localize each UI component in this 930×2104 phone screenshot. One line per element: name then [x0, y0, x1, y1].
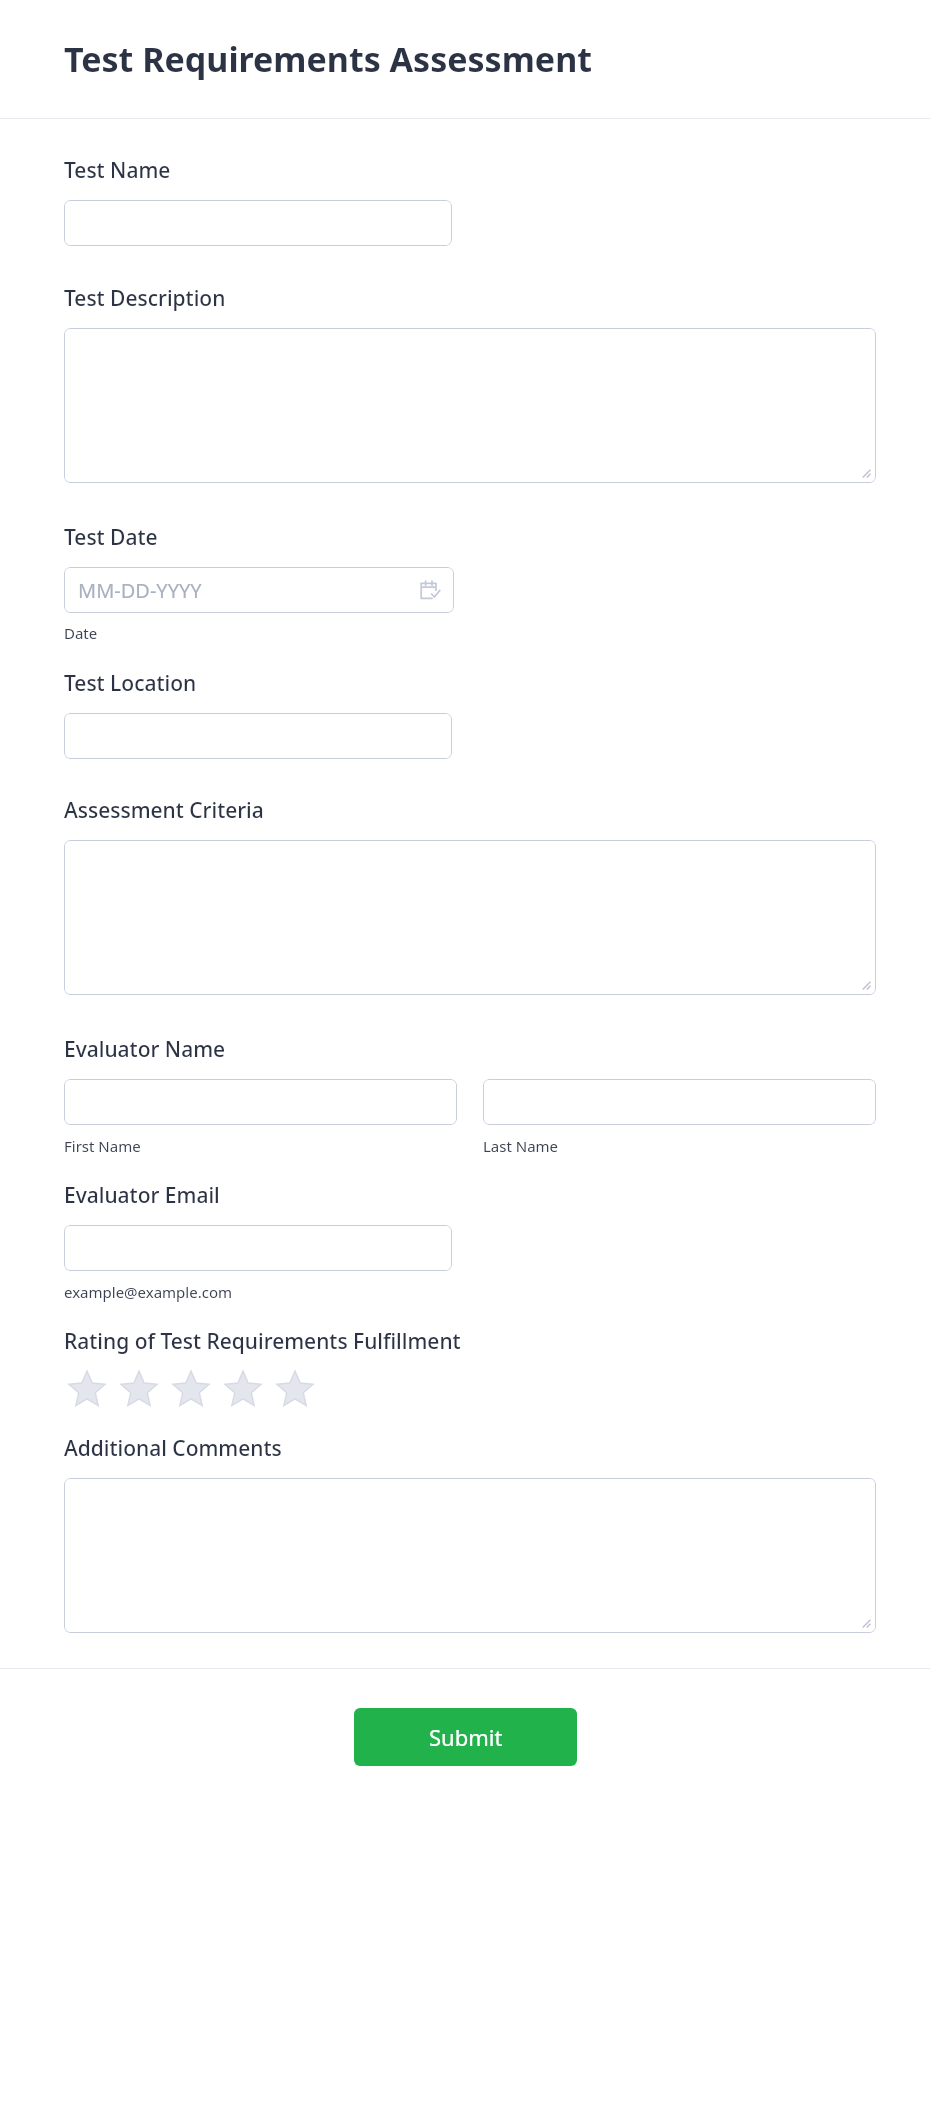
button[interactable]	[64, 1225, 452, 1271]
staticText: Additional Comments	[64, 1434, 282, 1463]
staticText: Test Description	[64, 284, 226, 313]
button[interactable]	[64, 1079, 457, 1125]
button[interactable]	[64, 200, 452, 246]
staticText: MM-DD-YYYY	[78, 577, 202, 604]
button[interactable]	[483, 1079, 876, 1125]
button[interactable]: Submit	[354, 1708, 577, 1766]
staticText: Test Name	[64, 156, 171, 185]
staticText: Evaluator Name	[64, 1035, 226, 1064]
button[interactable]: MM-DD-YYYY	[64, 567, 454, 613]
staticText: Date	[64, 623, 98, 643]
button[interactable]: Rate 2 stars	[116, 1366, 162, 1412]
button[interactable]: Rate 1 stars	[64, 1366, 110, 1412]
staticText: Test Date	[64, 523, 158, 552]
staticText: Evaluator Email	[64, 1181, 220, 1210]
button[interactable]: Rate 5 stars	[272, 1366, 318, 1412]
button[interactable]	[64, 328, 876, 483]
button[interactable]	[64, 840, 876, 995]
staticText: example@example.com	[64, 1282, 232, 1302]
staticText: Rating of Test Requirements Fulfillment	[64, 1327, 461, 1356]
staticText: Assessment Criteria	[64, 796, 264, 825]
staticText: Last Name	[483, 1136, 559, 1156]
other: Pick date	[420, 580, 440, 600]
staticText: First Name	[64, 1136, 141, 1156]
button[interactable]: Rate 4 stars	[220, 1366, 266, 1412]
staticText: Test Location	[64, 669, 197, 698]
staticText: Test Requirements Assessment	[64, 36, 592, 82]
button[interactable]	[64, 713, 452, 759]
button[interactable]	[64, 1478, 876, 1633]
staticText: Submit	[429, 1722, 503, 1752]
button[interactable]: Rate 3 stars	[168, 1366, 214, 1412]
